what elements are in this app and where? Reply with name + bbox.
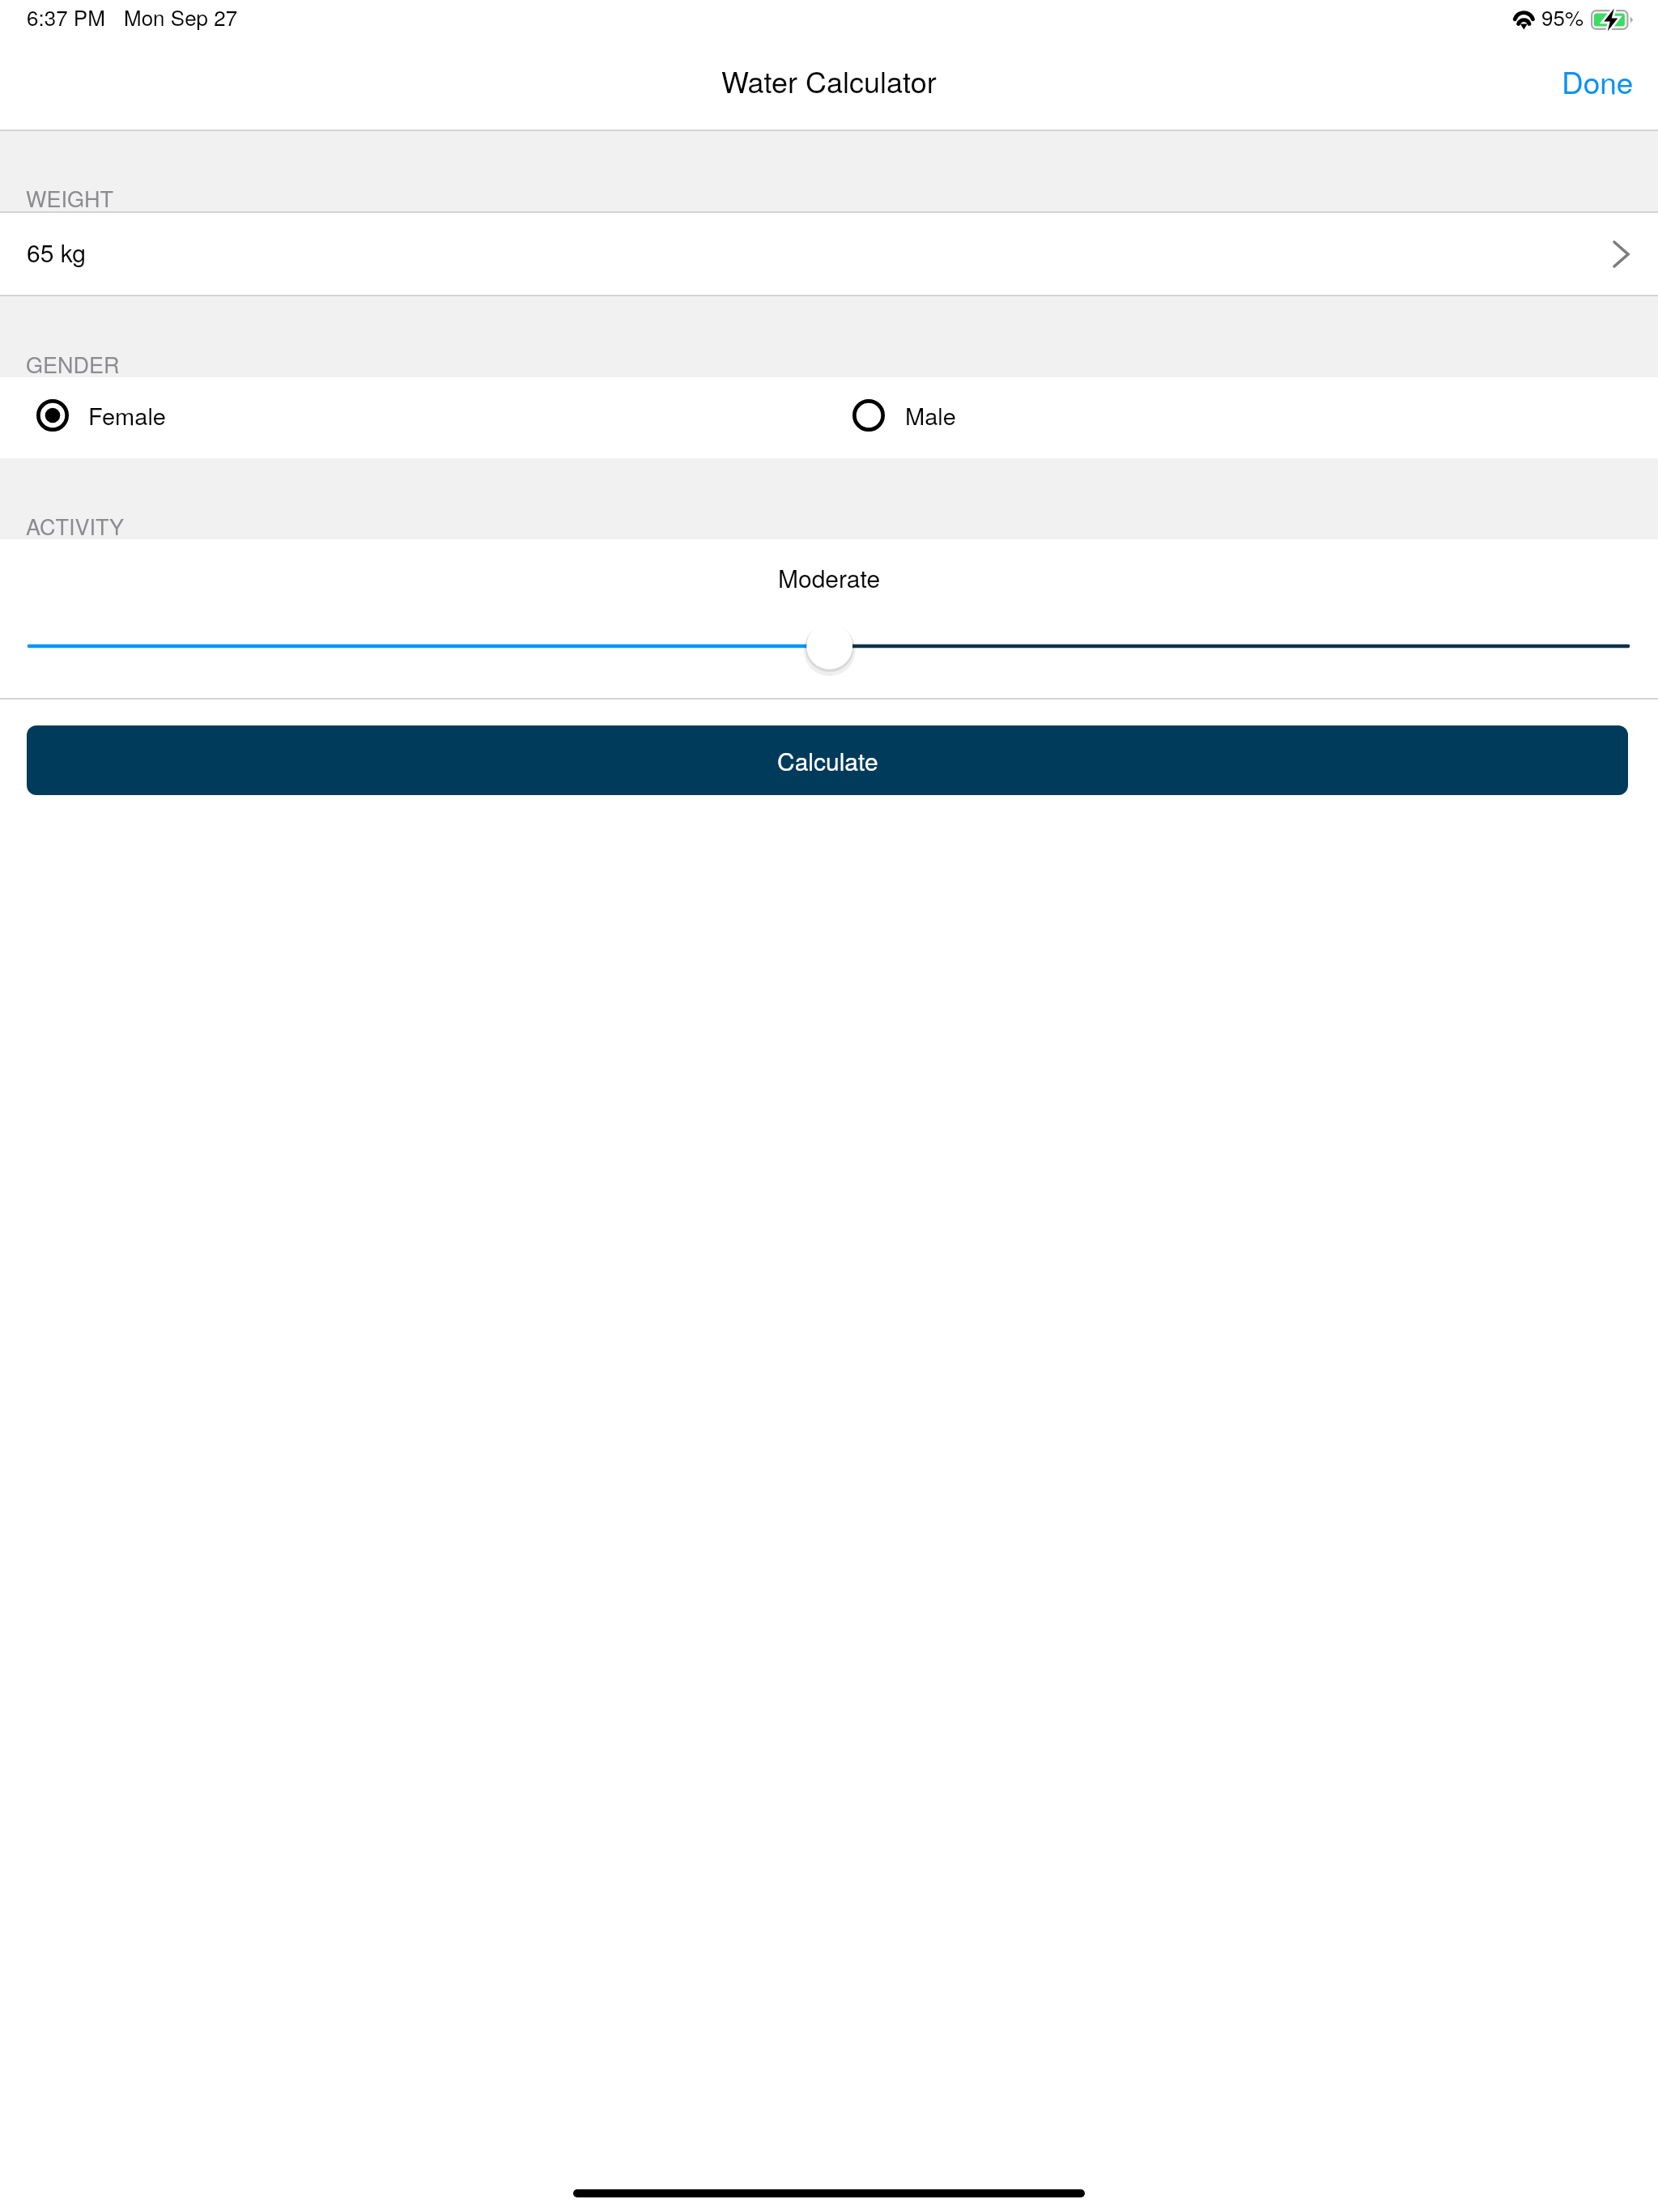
other: Battery 95 percent charging	[1591, 10, 1633, 30]
staticText: Water Calculator	[721, 60, 937, 102]
button[interactable]: Male	[829, 377, 1658, 458]
button[interactable]: Done	[1529, 49, 1658, 121]
staticText: Female	[88, 398, 166, 432]
staticText: 95%	[1541, 2, 1584, 32]
button[interactable]: Female	[0, 377, 829, 458]
button[interactable]: Calculate	[27, 725, 1628, 795]
staticText: 65 kg	[27, 235, 86, 270]
staticText: ACTIVITY	[26, 510, 125, 542]
staticText: 6:37 PM	[27, 2, 105, 32]
button[interactable]: 65 kg	[0, 213, 1658, 295]
button[interactable]: Activity level slider	[0, 539, 1658, 698]
staticText: Done	[1562, 60, 1634, 103]
staticText: Mon Sep 27	[124, 2, 238, 32]
staticText: WEIGHT	[26, 182, 113, 214]
other: Open	[1614, 242, 1628, 266]
staticText: Male	[905, 398, 956, 432]
staticText: Moderate	[778, 560, 881, 595]
other: Wi-Fi	[1512, 9, 1536, 30]
staticText: Calculate	[777, 743, 878, 778]
staticText: GENDER	[26, 348, 120, 380]
